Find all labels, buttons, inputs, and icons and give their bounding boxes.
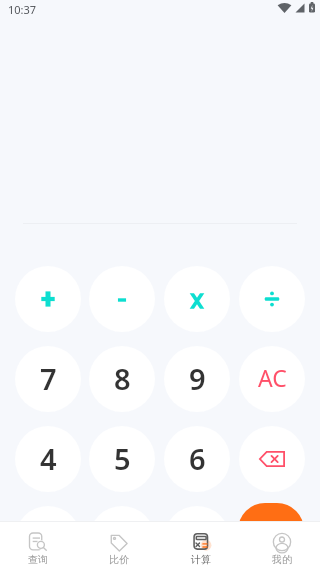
button[interactable]: Divide xyxy=(239,266,305,332)
button[interactable]: Equals xyxy=(238,503,304,569)
staticText: 9 xyxy=(189,359,206,398)
staticText: 计算 xyxy=(171,553,231,566)
staticText: 7 xyxy=(40,359,57,398)
button[interactable]: 8 xyxy=(89,346,155,412)
button[interactable]: 3 xyxy=(164,506,230,569)
button[interactable]: Multiply xyxy=(164,266,230,332)
staticText: 2 xyxy=(114,519,131,558)
button[interactable]: 比价 xyxy=(89,521,149,569)
button[interactable]: 5 xyxy=(89,426,155,492)
button[interactable]: 计算 xyxy=(171,521,231,569)
button[interactable]: 2 xyxy=(89,506,155,569)
staticText: 6 xyxy=(189,439,206,478)
button[interactable]: 查询 xyxy=(8,521,68,569)
button[interactable]: 我的 xyxy=(252,521,312,569)
button[interactable]: 6 xyxy=(164,426,230,492)
button[interactable]: Backspace xyxy=(239,426,305,492)
staticText: 查询 xyxy=(8,553,68,566)
staticText: 比价 xyxy=(89,553,149,566)
staticText: 4 xyxy=(40,439,57,478)
button[interactable]: Plus xyxy=(15,266,81,332)
staticText: 8 xyxy=(114,359,131,398)
button[interactable]: Minus xyxy=(89,266,155,332)
button[interactable]: 7 xyxy=(15,346,81,412)
staticText: 3 xyxy=(189,519,206,558)
button[interactable]: 4 xyxy=(15,426,81,492)
button[interactable]: AC xyxy=(239,346,305,412)
staticText: 10:37 xyxy=(8,2,37,17)
button[interactable]: 9 xyxy=(164,346,230,412)
button[interactable]: 1 xyxy=(15,506,81,569)
staticText: AC xyxy=(258,362,287,393)
staticText: 1 xyxy=(40,519,57,558)
staticText: 我的 xyxy=(252,553,312,566)
staticText: 5 xyxy=(114,439,131,478)
